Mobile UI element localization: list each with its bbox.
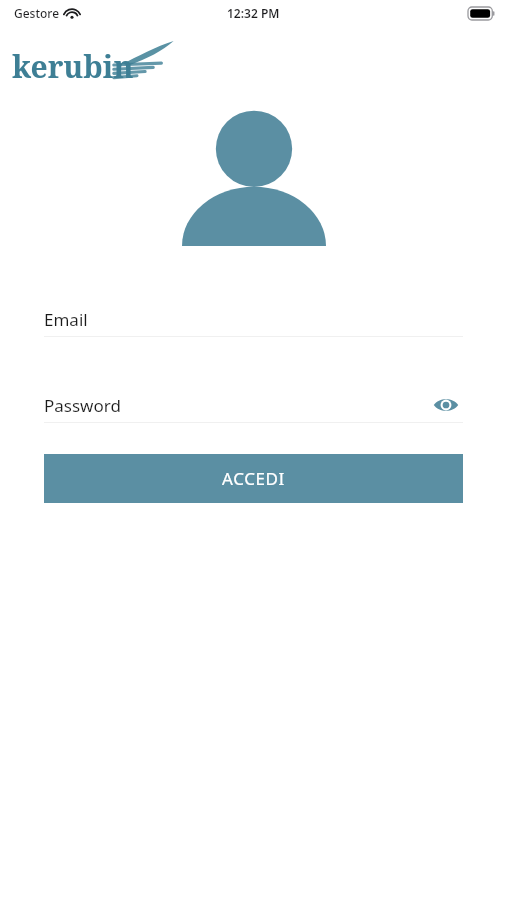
button[interactable]: ACCEDI: [44, 454, 463, 503]
staticText: 12:32 PM: [227, 5, 280, 21]
staticText: Email: [44, 308, 88, 331]
button[interactable]: Password: [44, 388, 463, 423]
staticText: Gestore: [14, 5, 60, 21]
button[interactable]: Show password: [429, 388, 463, 422]
staticText: Password: [44, 394, 121, 417]
staticText: kerubin: [12, 46, 134, 87]
staticText: ACCEDI: [222, 467, 285, 490]
button[interactable]: Email: [44, 302, 463, 337]
